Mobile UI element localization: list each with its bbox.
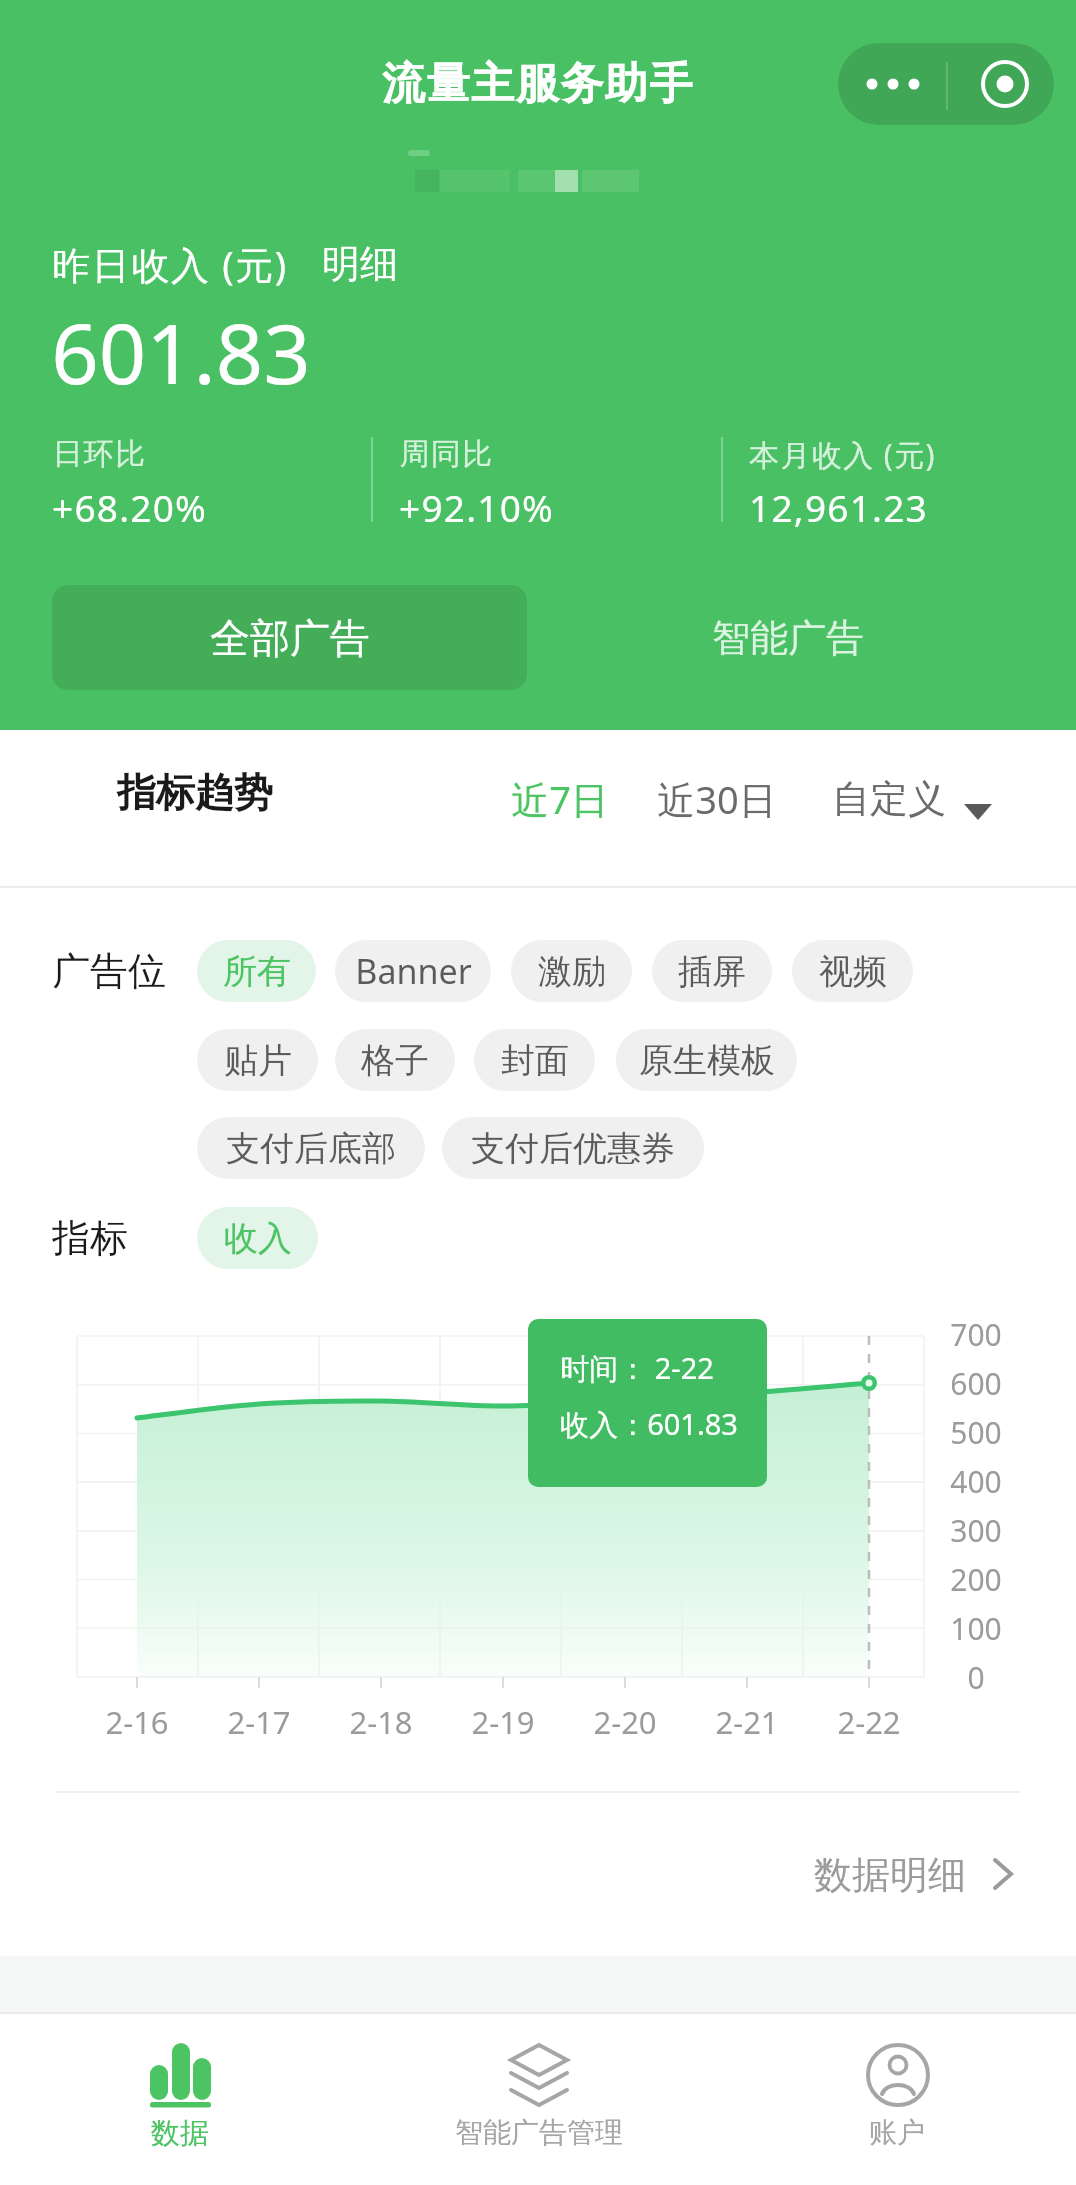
staticText: 收入 [224,1217,292,1260]
staticText: 600 [950,1363,1002,1404]
staticText: 周同比 [399,435,494,473]
button[interactable]: 支付后优惠券 [442,1117,704,1179]
staticText: 100 [950,1608,1002,1649]
button[interactable]: 支付后底部 [197,1117,425,1179]
button[interactable]: 数据明细 [780,1838,1030,1912]
button[interactable]: Banner [335,940,491,1002]
staticText: 收入：601.83 [560,1404,738,1444]
button[interactable]: 插屏 [652,940,772,1002]
button[interactable]: 明细 [322,236,422,292]
staticText: 贴片 [224,1039,292,1082]
button[interactable]: 视频 [792,940,913,1002]
staticText: 封面 [501,1039,569,1082]
staticText: 支付后优惠券 [471,1127,675,1170]
staticText: 2-21 [715,1701,779,1743]
button[interactable]: 全部广告 [52,585,527,690]
staticText: 2-22 [837,1701,901,1743]
staticText: 2-18 [349,1701,413,1743]
staticText: Banner [355,948,472,994]
staticText: 全部广告 [210,613,370,663]
button[interactable]: 所有 [197,940,316,1002]
button[interactable]: More [838,43,946,125]
button[interactable]: 智能广告管理 [359,2014,718,2185]
staticText: +92.10% [399,482,554,532]
staticText: 指标趋势 [117,768,273,817]
staticText: 400 [950,1461,1002,1502]
staticText: 智能广告 [712,614,864,662]
button[interactable]: 贴片 [197,1029,318,1091]
staticText: 700 [950,1314,1002,1355]
button[interactable]: 激励 [511,940,632,1002]
staticText: 日环比 [52,435,147,473]
staticText: 昨日收入 (元) [52,238,288,290]
staticText: +68.20% [52,482,207,532]
button[interactable]: 数据 [0,2014,359,2185]
staticText: 自定义 [832,775,946,823]
staticText: 原生模板 [639,1039,775,1082]
staticText: 智能广告管理 [455,2115,623,2150]
staticText: 账户 [869,2115,925,2150]
staticText: 本月收入 (元) [749,434,936,475]
staticText: 指标 [52,1214,128,1262]
staticText: 数据明细 [814,1851,966,1899]
staticText: 视频 [819,950,887,993]
staticText: 200 [950,1559,1002,1600]
button[interactable]: Close [946,43,1054,125]
button[interactable]: 近30日 [636,768,798,830]
button[interactable]: 格子 [335,1029,455,1091]
staticText: 0 [967,1657,985,1698]
button[interactable]: 近7日 [490,768,630,830]
staticText: 支付后底部 [226,1127,396,1170]
staticText: 格子 [361,1039,429,1082]
staticText: 2-17 [227,1701,291,1743]
button[interactable]: 智能广告 [600,585,976,690]
staticText: 500 [950,1412,1002,1453]
staticText: 广告位 [52,947,166,995]
staticText: 明细 [322,240,398,288]
staticText: 2-19 [471,1701,535,1743]
staticText: 流量主服务助手 [382,57,694,111]
button[interactable]: 封面 [474,1029,595,1091]
staticText: 激励 [538,950,606,993]
button[interactable]: 收入 [197,1207,318,1269]
staticText: 近7日 [511,773,609,825]
staticText: 2-20 [593,1701,657,1743]
staticText: 插屏 [678,950,746,993]
staticText: 12,961.23 [749,482,928,532]
button[interactable]: 自定义 [812,768,1012,830]
staticText: 近30日 [657,773,777,825]
staticText: 时间： 2-22 [560,1348,714,1388]
button[interactable]: 账户 [718,2014,1076,2185]
staticText: 所有 [223,950,291,993]
staticText: 数据 [151,2115,209,2152]
staticText: 2-16 [105,1701,169,1743]
button[interactable]: 原生模板 [616,1029,797,1091]
staticText: 300 [950,1510,1002,1551]
staticText: 601.83 [51,295,311,408]
